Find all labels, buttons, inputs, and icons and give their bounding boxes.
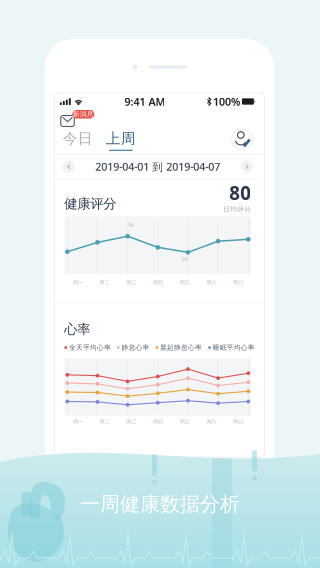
staticText: 心率 bbox=[64, 321, 90, 337]
staticText: 周五 bbox=[179, 279, 189, 286]
staticText: 周日 bbox=[233, 418, 243, 425]
staticText: 周一 bbox=[73, 279, 83, 286]
staticText: 80 bbox=[229, 180, 251, 205]
staticText: 周一 bbox=[73, 418, 83, 425]
button[interactable]: 编辑资料 bbox=[232, 129, 253, 151]
staticText: 日均评分 bbox=[223, 205, 251, 213]
button[interactable]: 下一周 bbox=[241, 161, 253, 173]
staticText: 周四 bbox=[153, 279, 163, 286]
staticText: 周五 bbox=[179, 418, 189, 425]
staticText: 周二 bbox=[99, 279, 109, 286]
staticText: 今日 bbox=[63, 129, 93, 147]
staticText: 周日 bbox=[233, 279, 243, 286]
button[interactable]: 今日 bbox=[63, 129, 93, 151]
staticText: 周四 bbox=[153, 418, 163, 425]
staticText: 上周 bbox=[106, 129, 136, 147]
staticText: 新消息 bbox=[73, 110, 94, 118]
staticText: 2019-04-01 到 2019-04-07 bbox=[95, 160, 220, 174]
staticText: 全天平均心率 bbox=[69, 343, 111, 352]
staticText: 健康评分 bbox=[64, 195, 116, 212]
staticText: 100% bbox=[213, 94, 240, 109]
staticText: 周六 bbox=[206, 279, 216, 286]
staticText: 晨起静息心率 bbox=[160, 343, 202, 352]
button[interactable]: 新消息 bbox=[61, 108, 107, 127]
staticText: 9:41 AM bbox=[124, 94, 165, 109]
staticText: 一周健康数据分析 bbox=[80, 492, 240, 516]
staticText: 68 bbox=[181, 255, 187, 262]
button[interactable]: 上周 bbox=[106, 129, 136, 151]
staticText: 周三 bbox=[126, 279, 136, 286]
staticText: 睡眠平均心率 bbox=[213, 343, 255, 352]
staticText: 周二 bbox=[99, 418, 109, 425]
staticText: 周三 bbox=[126, 418, 136, 425]
button[interactable]: 上一周 bbox=[63, 161, 75, 173]
staticText: 周六 bbox=[206, 418, 216, 425]
staticText: 96 bbox=[128, 221, 134, 228]
staticText: 静息心率 bbox=[121, 343, 149, 352]
